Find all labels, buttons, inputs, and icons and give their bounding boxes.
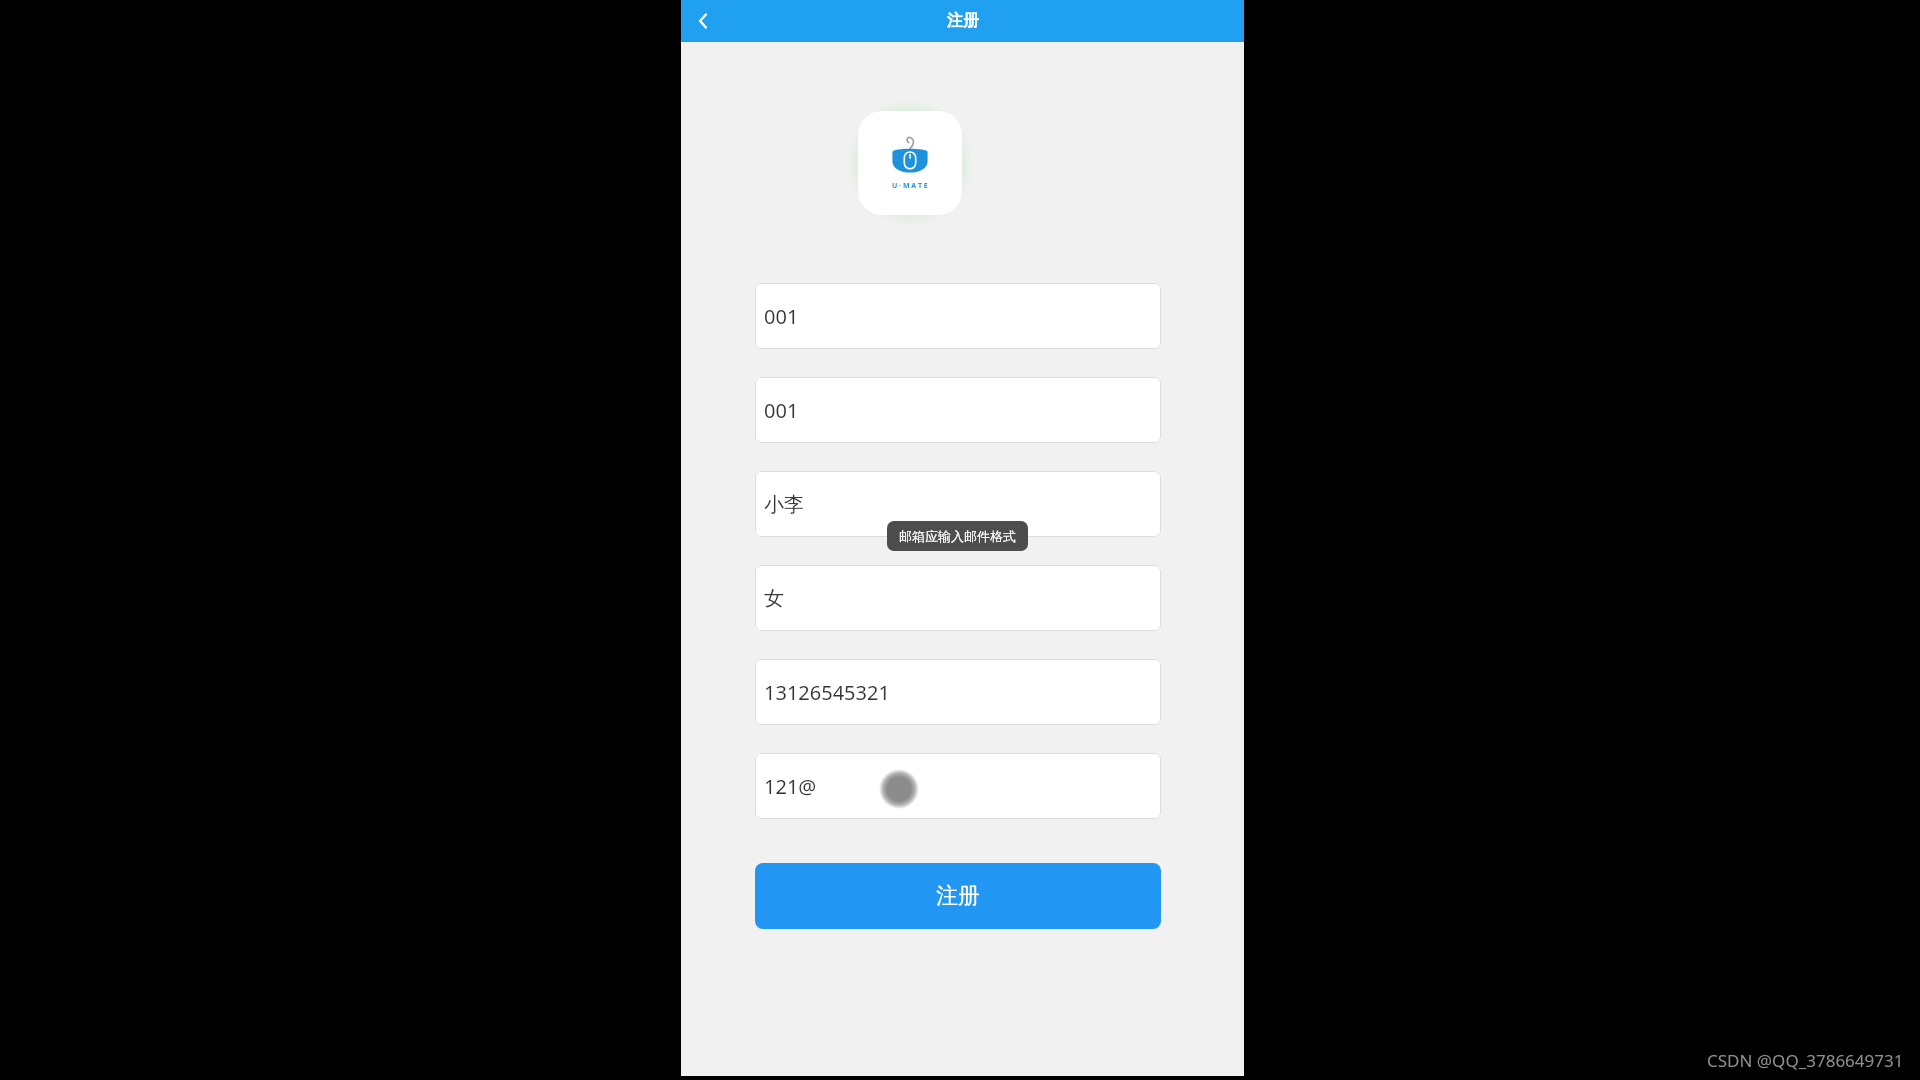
staticText: 注册: [936, 882, 980, 910]
button[interactable]: 001: [755, 377, 1161, 443]
button[interactable]: Back: [685, 3, 721, 39]
staticText: 001: [764, 397, 799, 424]
staticText: 邮箱应输入邮件格式: [899, 528, 1016, 544]
button[interactable]: 女: [755, 565, 1161, 631]
staticText: 小李: [764, 492, 804, 517]
button[interactable]: 121@: [755, 753, 1161, 819]
staticText: 注册: [947, 11, 979, 31]
staticText: 女: [764, 586, 784, 611]
button[interactable]: U-MATE logo: [858, 111, 962, 215]
button[interactable]: 小李: [755, 471, 1161, 537]
staticText: U · M A T E: [892, 181, 928, 191]
button[interactable]: 注册: [755, 863, 1161, 929]
staticText: 121@: [764, 773, 817, 800]
button[interactable]: 13126545321: [755, 659, 1161, 725]
staticText: 13126545321: [764, 679, 890, 706]
staticText: 001: [764, 303, 799, 330]
button[interactable]: 001: [755, 283, 1161, 349]
staticText: CSDN @QQ_3786649731: [1707, 1049, 1904, 1072]
